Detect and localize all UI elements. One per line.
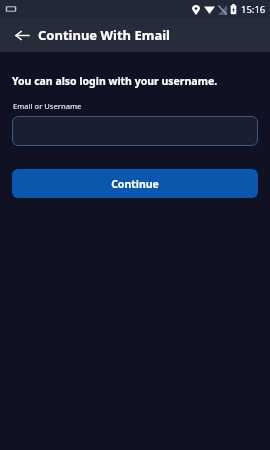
staticText: 15:16 [241,3,266,16]
staticText: Continue With Email [38,26,170,44]
button[interactable]: Back [10,23,34,47]
button[interactable]: Email or Username input [12,116,258,146]
staticText: You can also login with your username. [12,74,218,88]
staticText: Email or Username [13,101,82,111]
staticText: Continue [111,177,159,191]
button[interactable]: Continue [12,169,258,198]
